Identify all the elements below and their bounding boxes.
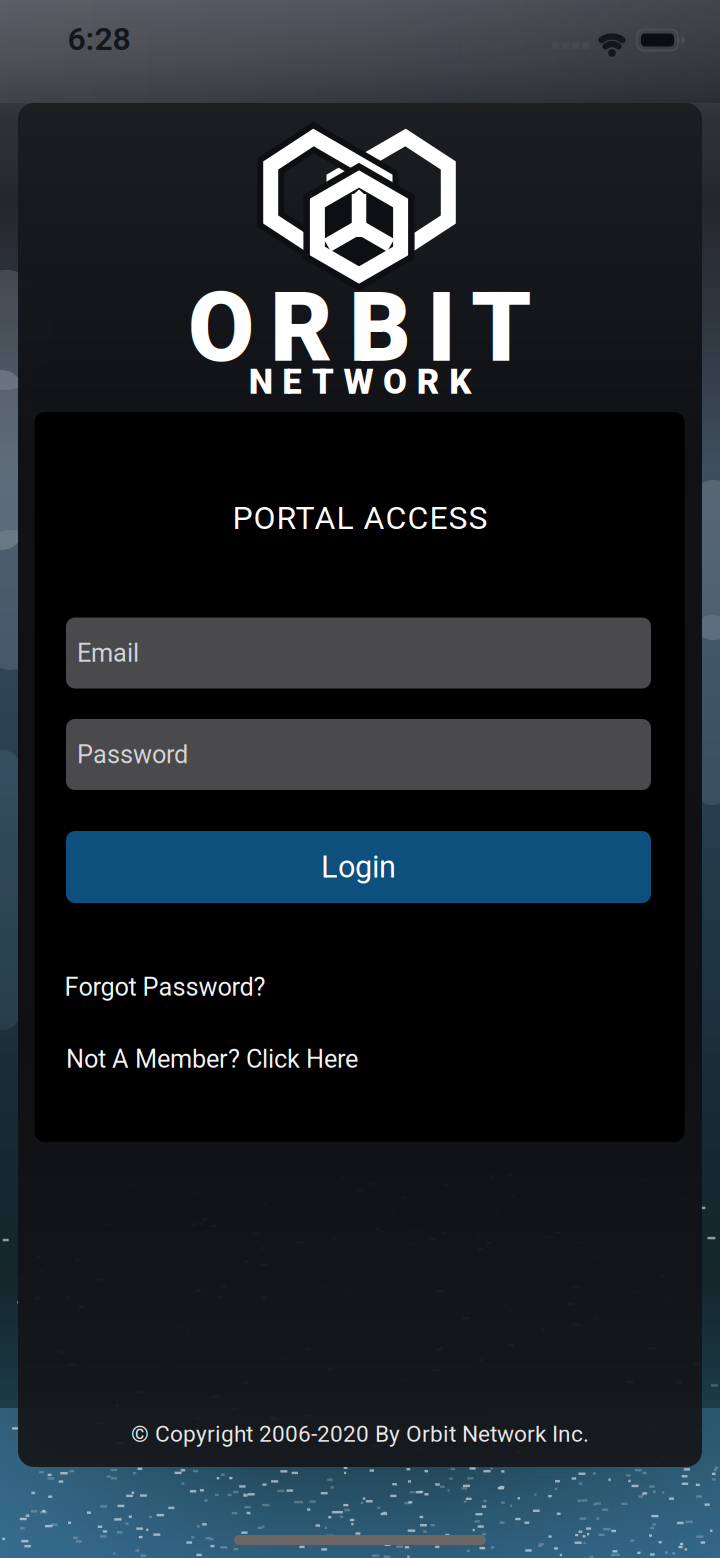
button[interactable]: Not A Member? Click Here <box>66 1044 358 1073</box>
staticText: NETWORK <box>249 362 471 402</box>
staticText: Email <box>77 638 139 667</box>
staticText: Login <box>321 849 396 884</box>
staticText: Password <box>77 740 188 769</box>
staticText: PORTAL ACCESS <box>232 500 487 536</box>
button[interactable]: Email <box>66 617 651 688</box>
button[interactable]: Login <box>66 831 651 903</box>
staticText: © Copyright 2006-2020 By Orbit Network I… <box>131 1421 589 1447</box>
button[interactable]: Forgot Password? <box>64 972 265 1001</box>
button[interactable]: Password <box>66 719 651 790</box>
staticText: 6:28 <box>67 21 130 57</box>
staticText: Forgot Password? <box>64 972 265 1001</box>
staticText: ORBIT <box>188 273 532 383</box>
staticText: Not A Member? Click Here <box>66 1044 358 1073</box>
